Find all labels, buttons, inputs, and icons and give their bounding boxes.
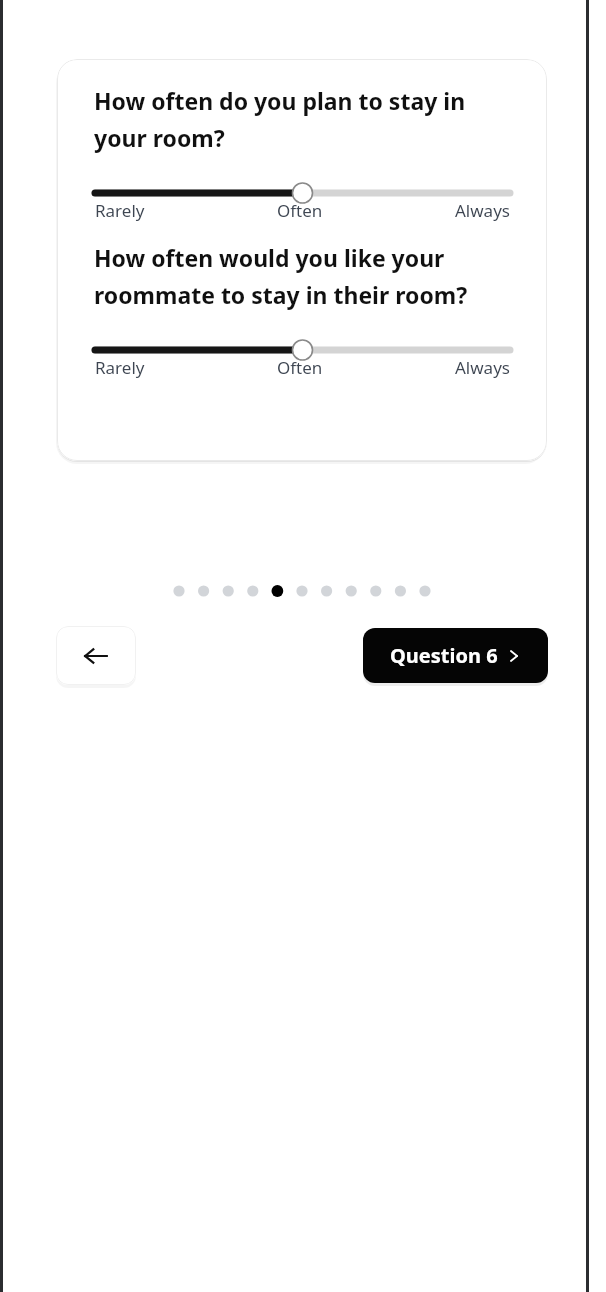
staticText: Question 6 [390,642,498,669]
button[interactable]: Back [56,626,136,685]
staticText: Often [277,199,323,222]
button[interactable]: Question 6 [363,628,548,683]
staticText: How often do you plan to stay in your ro… [94,85,494,154]
button[interactable]: Frequency slider [87,180,518,206]
staticText: Often [277,356,323,379]
staticText: How often would you like your roommate t… [94,242,494,311]
staticText: Always [455,356,510,379]
staticText: Rarely [95,199,145,222]
staticText: Rarely [95,356,145,379]
staticText: Always [455,199,510,222]
button[interactable]: Frequency slider [87,337,518,363]
